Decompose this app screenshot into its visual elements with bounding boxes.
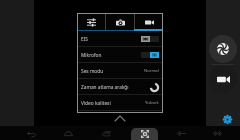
button[interactable]: Resize [211,127,223,139]
button[interactable]: Recent apps [100,127,112,139]
button[interactable]: Shutter [209,35,237,63]
button[interactable]: EIS [77,31,163,47]
staticText: Zaman atlama aralığı [81,84,129,91]
button[interactable]: Previous [175,127,187,139]
button[interactable]: Video kalitesi [77,95,163,111]
button[interactable]: Video mode [135,13,163,31]
staticText: Yüksek [145,100,159,106]
button[interactable]: Home [62,127,74,139]
staticText: Normal [144,68,159,74]
staticText: EIS [81,36,88,43]
staticText: Mikrofon [81,52,102,59]
staticText: Video kalitesi [81,100,111,107]
button[interactable]: Screenshot [131,128,158,140]
button[interactable]: Mikrofon [77,47,163,63]
staticText: Ses modu [81,68,104,75]
button[interactable]: Adjustments [77,13,105,31]
button[interactable]: Back [25,127,37,139]
button[interactable]: Record video [209,65,237,93]
button[interactable]: On [141,52,159,58]
button[interactable]: Ses modu [77,63,163,79]
button[interactable]: Off [141,36,159,42]
button[interactable]: Settings [221,113,234,126]
button[interactable]: Collapse settings [110,114,130,123]
button[interactable]: Zaman atlama aralığı [77,79,163,95]
button[interactable]: Photo mode [106,13,134,31]
